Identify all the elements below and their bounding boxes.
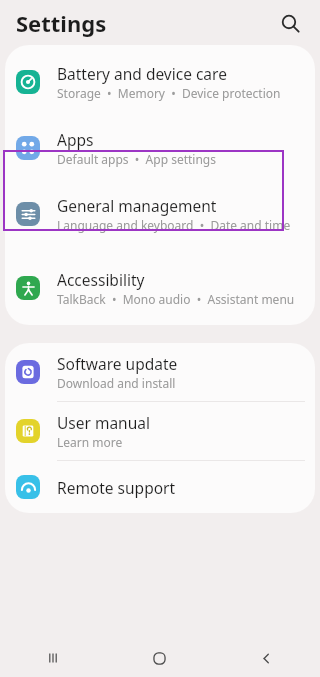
button[interactable]: Battery and device care xyxy=(5,45,315,119)
staticText: Default apps • App settings xyxy=(57,151,216,167)
staticText: Battery and device care xyxy=(57,63,227,84)
button[interactable]: Recent apps xyxy=(0,639,106,677)
staticText: Remote support xyxy=(57,477,176,498)
button[interactable]: Search xyxy=(276,9,304,37)
staticText: Language and keyboard • Date and time xyxy=(57,217,291,233)
button[interactable]: Software update xyxy=(5,343,315,401)
button[interactable]: Back xyxy=(213,639,320,677)
staticText: Accessibility xyxy=(57,269,145,290)
staticText: User manual xyxy=(57,412,150,433)
button[interactable]: Home xyxy=(106,639,213,677)
staticText: Software update xyxy=(57,353,178,374)
button[interactable]: User manual xyxy=(5,402,315,460)
staticText: Storage • Memory • Device protection xyxy=(57,85,281,101)
staticText: Settings xyxy=(16,8,107,38)
button[interactable]: Remote support xyxy=(5,461,315,513)
button[interactable]: General management xyxy=(5,177,315,251)
staticText: Learn more xyxy=(57,434,123,450)
staticText: Download and install xyxy=(57,375,176,391)
button[interactable]: Accessibility xyxy=(5,251,315,325)
staticText: Apps xyxy=(57,129,94,150)
staticText: General management xyxy=(57,195,217,216)
button[interactable]: Apps xyxy=(5,119,315,177)
staticText: TalkBack • Mono audio • Assistant menu xyxy=(57,291,295,307)
